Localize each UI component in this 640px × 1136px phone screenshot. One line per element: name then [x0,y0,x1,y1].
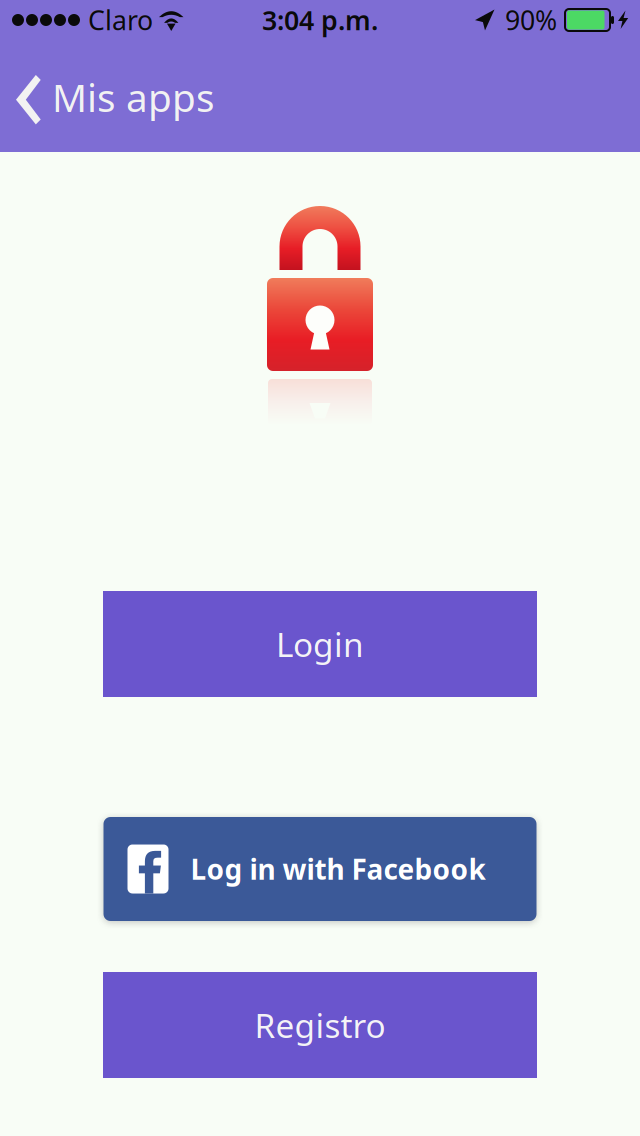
button[interactable]: Back to Mis apps [0,40,231,152]
staticText: Claro [88,2,153,38]
staticText: 90% [505,2,557,38]
staticText: Registro [254,1003,385,1047]
staticText: Login [276,622,364,666]
button[interactable]: Login [103,591,537,697]
staticText: Log in with Facebook [190,850,485,888]
button[interactable]: Registro [103,972,537,1078]
button[interactable]: Log in with Facebook [103,817,536,921]
staticText: Mis apps [52,71,215,123]
staticText: 3:04 p.m. [262,2,378,38]
